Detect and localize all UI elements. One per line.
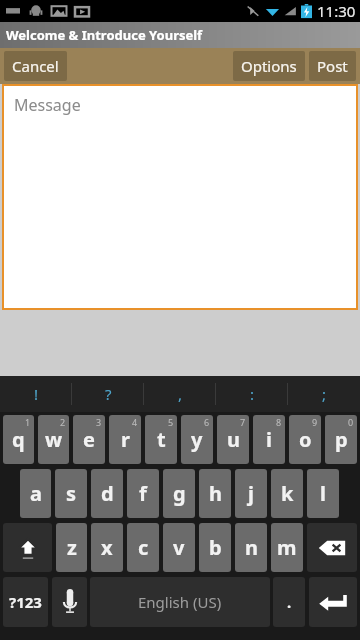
staticText: 9	[312, 416, 318, 428]
staticText: b	[209, 534, 222, 561]
button[interactable]: Post	[309, 51, 356, 81]
button[interactable]: u	[217, 415, 249, 464]
button[interactable]: s	[55, 469, 87, 518]
staticText: 5	[168, 416, 174, 428]
staticText: 2	[60, 416, 66, 428]
button[interactable]: z	[56, 523, 87, 572]
staticText: k	[281, 480, 294, 507]
button[interactable]: ?123	[3, 577, 48, 627]
staticText: 8	[276, 416, 282, 428]
button[interactable]: ,	[144, 376, 216, 412]
staticText: c	[138, 534, 149, 561]
staticText: z	[67, 534, 77, 561]
button[interactable]: e	[73, 415, 105, 464]
button[interactable]: i	[253, 415, 285, 464]
staticText: p	[335, 426, 348, 453]
button[interactable]: ;	[288, 376, 360, 412]
staticText: u	[227, 426, 240, 453]
staticText: Cancel	[12, 56, 59, 76]
button[interactable]: m	[271, 523, 303, 572]
button[interactable]: r	[109, 415, 141, 464]
button[interactable]: w	[38, 415, 69, 464]
button[interactable]: l	[307, 469, 339, 518]
staticText: ;	[322, 384, 327, 404]
staticText: :	[250, 384, 255, 404]
button[interactable]: b	[199, 523, 231, 572]
staticText: Welcome & Introduce Yourself	[6, 26, 203, 44]
staticText: l	[320, 480, 326, 507]
staticText: d	[101, 480, 114, 507]
staticText: Message	[14, 94, 81, 116]
button[interactable]: n	[235, 523, 267, 572]
button[interactable]: a	[20, 469, 51, 518]
staticText: s	[66, 480, 77, 507]
staticText: 4	[132, 416, 138, 428]
staticText: f	[139, 480, 147, 507]
staticText: 11:30	[317, 1, 356, 21]
button[interactable]: y	[181, 415, 213, 464]
button[interactable]: j	[235, 469, 267, 518]
staticText: t	[157, 426, 166, 453]
staticText: o	[299, 426, 312, 453]
button[interactable]: q	[3, 415, 34, 464]
button[interactable]: !	[0, 376, 72, 412]
staticText: v	[173, 534, 185, 561]
button[interactable]: Shift	[3, 523, 52, 572]
button[interactable]: x	[91, 523, 123, 572]
staticText: e	[83, 426, 95, 453]
staticText: w	[45, 426, 63, 453]
staticText: ?123	[9, 592, 42, 612]
staticText: .	[287, 592, 292, 612]
staticText: 7	[240, 416, 246, 428]
staticText: q	[12, 426, 25, 453]
staticText: j	[248, 480, 254, 507]
staticText: 0	[348, 416, 354, 428]
staticText: m	[277, 534, 297, 561]
staticText: Post	[317, 56, 348, 76]
button[interactable]: ?	[72, 376, 144, 412]
button[interactable]: .	[273, 577, 305, 627]
button[interactable]: c	[127, 523, 159, 572]
button[interactable]: d	[91, 469, 123, 518]
staticText: Options	[241, 56, 297, 76]
staticText: h	[209, 480, 222, 507]
button[interactable]: Cancel	[4, 51, 67, 81]
staticText: ?	[105, 384, 112, 404]
button[interactable]: Delete	[307, 523, 357, 572]
staticText: n	[245, 534, 258, 561]
staticText: g	[173, 480, 186, 507]
button[interactable]: Enter	[309, 577, 357, 627]
staticText: y	[191, 426, 203, 453]
staticText: i	[266, 426, 272, 453]
button[interactable]: h	[199, 469, 231, 518]
button[interactable]: English (US)	[90, 577, 270, 627]
button[interactable]: o	[289, 415, 321, 464]
staticText: x	[101, 534, 113, 561]
staticText: ,	[178, 384, 183, 404]
button[interactable]: k	[271, 469, 303, 518]
button[interactable]: Options	[233, 51, 305, 81]
staticText: 1	[25, 416, 31, 428]
staticText: 6	[204, 416, 210, 428]
button[interactable]: p	[325, 415, 357, 464]
button[interactable]: Message	[4, 86, 356, 308]
staticText: English (US)	[138, 592, 222, 612]
button[interactable]: g	[163, 469, 195, 518]
staticText: r	[121, 426, 130, 453]
button[interactable]: t	[145, 415, 177, 464]
staticText: !	[34, 384, 39, 404]
button[interactable]: :	[216, 376, 288, 412]
button[interactable]: f	[127, 469, 159, 518]
staticText: a	[30, 480, 42, 507]
button[interactable]: v	[163, 523, 195, 572]
staticText: 3	[96, 416, 102, 428]
button[interactable]: Voice input	[52, 577, 87, 627]
